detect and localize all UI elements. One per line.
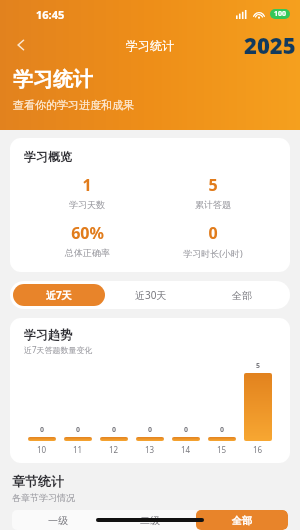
staticText: 2025	[244, 30, 296, 60]
staticText: 15	[217, 444, 227, 455]
staticText: 学习统计	[126, 38, 174, 53]
staticText: 查看你的学习进度和成果	[13, 98, 134, 112]
staticText: 全部	[232, 289, 252, 302]
staticText: 总体正确率	[65, 247, 110, 258]
staticText: 学习天数	[69, 199, 105, 210]
button[interactable]: 二级	[104, 510, 196, 530]
button[interactable]: 全部	[196, 510, 288, 530]
staticText: 近7天答题数量变化	[24, 344, 93, 355]
staticText: 0	[76, 425, 81, 435]
staticText: 学习时长(小时)	[183, 247, 243, 259]
staticText: 60%	[71, 222, 104, 244]
staticText: 0	[208, 222, 218, 244]
staticText: 二级	[140, 514, 160, 527]
staticText: 100	[274, 9, 287, 19]
button[interactable]: 一级	[12, 510, 104, 530]
button[interactable]: 近30天	[105, 284, 196, 306]
staticText: 各章节学习情况	[12, 492, 75, 503]
staticText: 10	[37, 444, 47, 455]
staticText: 学习趋势	[24, 327, 72, 342]
staticText: 5	[208, 174, 218, 196]
staticText: 0	[220, 425, 225, 435]
staticText: 近7天	[46, 288, 72, 302]
staticText: 0	[112, 425, 117, 435]
button[interactable]: 全部	[196, 284, 287, 306]
staticText: 14	[181, 444, 191, 455]
staticText: 13	[145, 444, 155, 455]
staticText: 0	[148, 425, 153, 435]
staticText: 一级	[48, 514, 68, 527]
staticText: 16	[253, 444, 263, 455]
button[interactable]: 1	[24, 174, 150, 210]
staticText: 学习统计	[13, 67, 93, 92]
staticText: 0	[40, 425, 45, 435]
staticText: 11	[73, 444, 83, 455]
staticText: 0	[184, 425, 189, 435]
staticText: 5	[256, 361, 261, 371]
button[interactable]: 近7天	[13, 284, 105, 306]
staticText: 章节统计	[12, 473, 64, 489]
staticText: 1	[82, 174, 92, 196]
button[interactable]: 0	[150, 222, 276, 259]
button[interactable]: 60%	[24, 222, 150, 258]
staticText: 学习概览	[24, 149, 72, 164]
staticText: 近30天	[135, 288, 167, 302]
staticText: 12	[109, 444, 119, 455]
staticText: 累计答题	[195, 199, 231, 210]
staticText: 16:45	[36, 7, 65, 22]
staticText: 全部	[232, 514, 252, 527]
button[interactable]: Back	[6, 30, 36, 60]
button[interactable]: 5	[150, 174, 276, 210]
